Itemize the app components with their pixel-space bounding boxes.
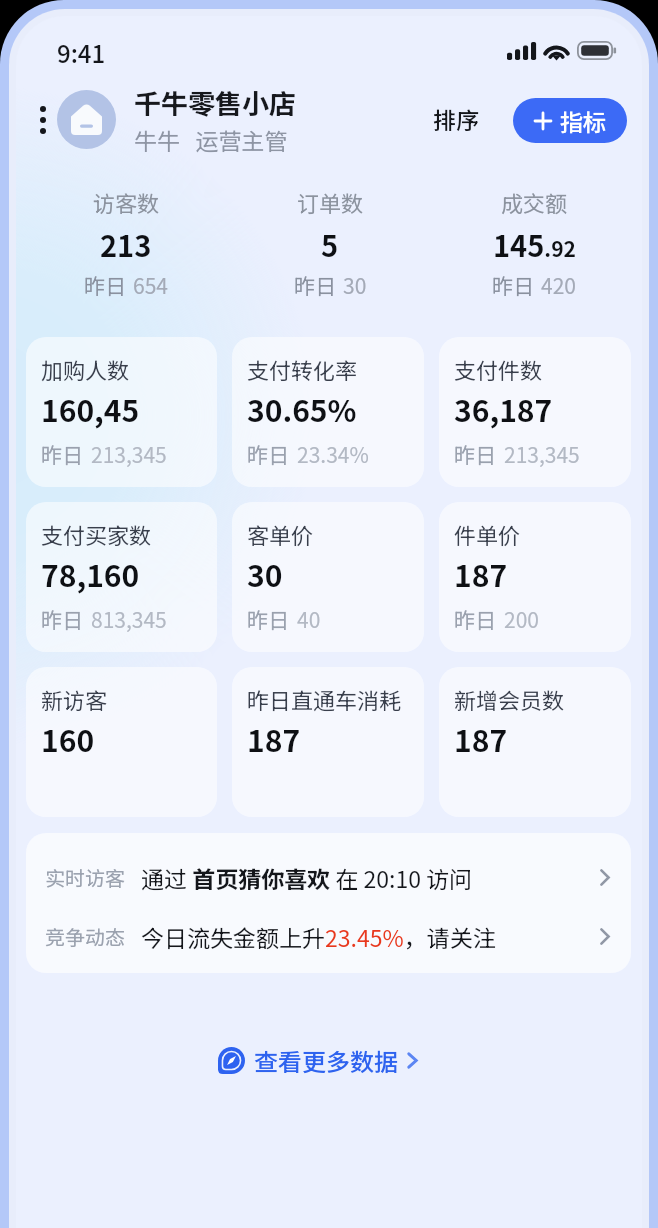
button[interactable]: 新增会员数 [439, 667, 631, 817]
staticText: 30.65% [247, 387, 357, 430]
staticText: 支付买家数 [41, 518, 152, 550]
staticText: 昨日 [454, 604, 496, 634]
staticText: 支付件数 [454, 353, 543, 385]
staticText: 指标 [560, 104, 606, 137]
staticText: 187 [454, 552, 508, 595]
staticText: 213,345 [91, 439, 167, 469]
staticText: 昨日直通车消耗 [247, 683, 402, 715]
button[interactable]: 支付件数 [439, 337, 631, 487]
button[interactable]: 访客数 [24, 186, 228, 300]
staticText: 排序 [433, 102, 479, 135]
button[interactable]: 实时访客 [26, 848, 631, 907]
staticText: 213 [100, 223, 152, 265]
button[interactable]: 件单价 [439, 502, 631, 652]
button[interactable]: 查看更多数据 [210, 1040, 426, 1080]
staticText: 654 [133, 270, 168, 300]
staticText: 客单价 [247, 518, 314, 550]
staticText: 昨日 [41, 439, 83, 469]
staticText: 昨日 [41, 604, 83, 634]
staticText: 通过 首页猜你喜欢 在 20:10 访问 [141, 861, 473, 894]
staticText: 187 [247, 717, 301, 760]
staticText: 5 [321, 223, 339, 265]
button[interactable]: 加购人数 [26, 337, 217, 487]
staticText: 30 [247, 552, 283, 595]
staticText: 200 [504, 604, 539, 634]
staticText: 昨日 [294, 270, 336, 300]
staticText: 160,45 [41, 387, 140, 430]
staticText: 40 [297, 604, 321, 634]
staticText: 昨日 [84, 270, 126, 300]
staticText: 160 [41, 717, 95, 760]
button[interactable]: Shop avatar [57, 90, 116, 149]
button[interactable]: 指标 [513, 98, 627, 143]
staticText: 昨日 [492, 270, 534, 300]
staticText: 187 [454, 717, 508, 760]
button[interactable]: 新访客 [26, 667, 217, 817]
staticText: 昨日 [454, 439, 496, 469]
staticText: 千牛零售小店 [134, 83, 296, 122]
button[interactable]: 竞争动态 [26, 907, 631, 966]
staticText: 昨日 [247, 439, 289, 469]
staticText: 竞争动态 [45, 922, 125, 951]
button[interactable]: 客单价 [232, 502, 424, 652]
staticText: 加购人数 [41, 353, 130, 385]
button[interactable]: 成交额 [432, 186, 636, 300]
staticText: 813,345 [91, 604, 167, 634]
staticText: 查看更多数据 [254, 1043, 398, 1078]
staticText: 213,345 [504, 439, 580, 469]
staticText: 145.92 [493, 223, 576, 265]
staticText: 今日流失金额上升23.45%，请关注 [141, 920, 496, 953]
button[interactable]: 订单数 [228, 186, 432, 300]
staticText: 23.34% [297, 439, 369, 469]
staticText: 30 [343, 270, 367, 300]
staticText: 昨日 [247, 604, 289, 634]
button[interactable]: 支付转化率 [232, 337, 424, 487]
staticText: 实时访客 [45, 863, 125, 892]
staticText: 9:41 [57, 35, 106, 70]
staticText: 成交额 [501, 186, 568, 218]
staticText: 件单价 [454, 518, 521, 550]
staticText: 新增会员数 [454, 683, 565, 715]
staticText: 新访客 [41, 683, 108, 715]
staticText: 订单数 [297, 186, 364, 218]
staticText: 36,187 [454, 387, 553, 430]
staticText: 访客数 [93, 186, 160, 218]
staticText: 420 [541, 270, 576, 300]
button[interactable]: 昨日直通车消耗 [232, 667, 424, 817]
staticText: 78,160 [41, 552, 140, 595]
staticText: 支付转化率 [247, 353, 358, 385]
button[interactable]: More options [30, 96, 56, 144]
button[interactable]: 排序 [421, 90, 491, 147]
staticText: 牛牛 运营主管 [134, 123, 288, 156]
button[interactable]: 支付买家数 [26, 502, 217, 652]
